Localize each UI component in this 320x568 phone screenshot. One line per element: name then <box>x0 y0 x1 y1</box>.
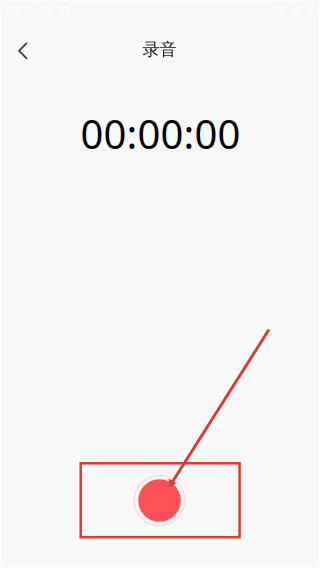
staticText: 00:00:00 <box>80 107 240 160</box>
button[interactable]: Back <box>0 28 44 72</box>
button[interactable]: Record <box>129 470 189 530</box>
staticText: 录音 <box>142 39 176 60</box>
